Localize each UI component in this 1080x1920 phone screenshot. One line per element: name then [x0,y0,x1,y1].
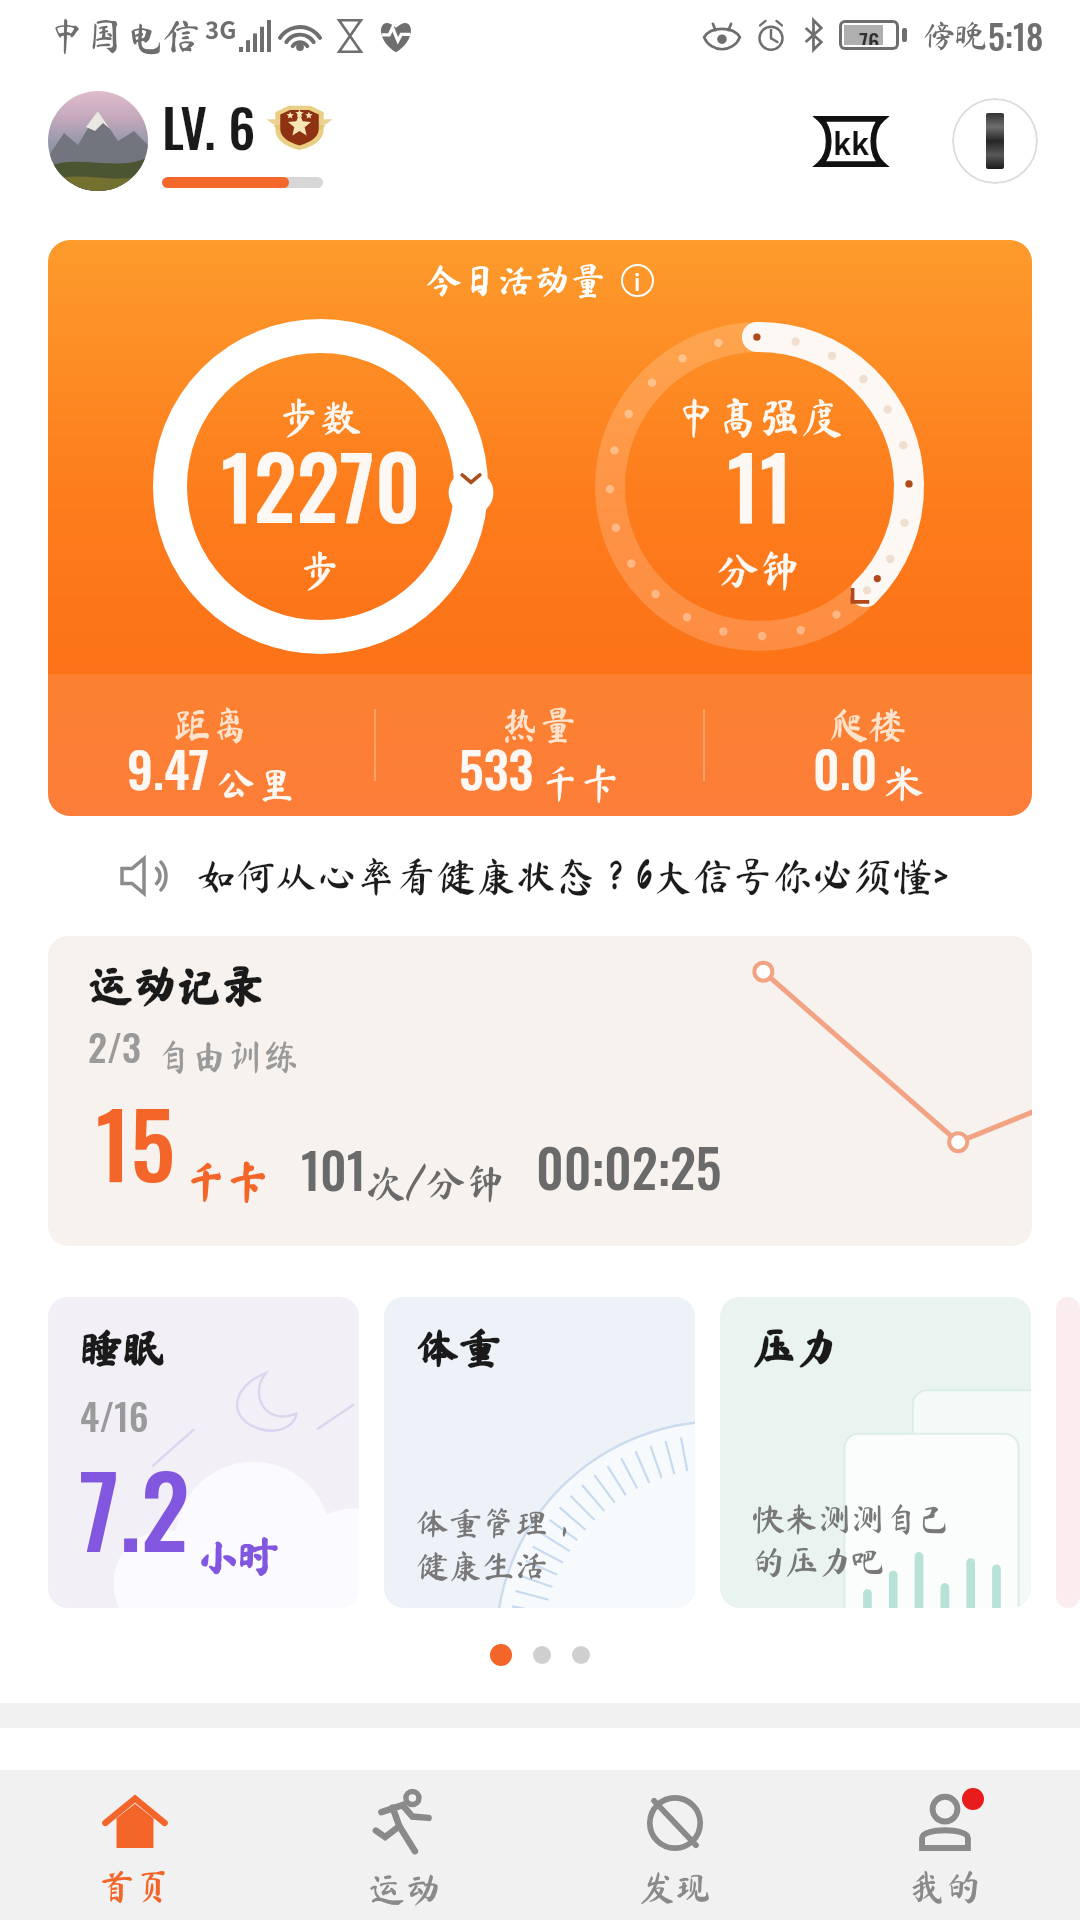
staticText: 7.2 [79,1435,190,1580]
staticText: 运动记录 [88,964,264,1008]
staticText: 千卡 [540,763,620,803]
staticText: 5:18 [988,10,1044,60]
staticText: 体重 [416,1327,501,1369]
staticText: 中国电信 [48,17,201,55]
staticText: 距离 [173,706,250,744]
button[interactable]: 我的 [810,1778,1080,1920]
staticText: 533 [459,730,534,804]
staticText: 傍晚 [923,19,988,51]
staticText: 3G [205,11,237,46]
staticText: 分钟 [717,549,802,591]
staticText: 76 [859,25,880,45]
staticText: 如何从心率看健康状态？6大信号你必须懂> [196,856,949,896]
staticText: 101 [301,1131,366,1205]
staticText: 爬楼 [830,706,907,744]
staticText: 步 [299,549,342,591]
staticText: 的压力吧 [752,1545,884,1578]
staticText: 11 [727,420,793,547]
staticText: 00:02:25 [536,1128,722,1205]
staticText: i [634,265,641,297]
staticText: 中高强度 [675,396,844,438]
staticText: 首页 [99,1868,172,1904]
staticText: 小时 [195,1535,280,1577]
staticText: 发现 [639,1869,712,1905]
button[interactable]: 运动 [270,1778,540,1920]
staticText: 4/16 [80,1387,149,1443]
button[interactable]: Device [952,98,1038,184]
button[interactable]: 如何从心率看健康状态？6大信号你必须懂> [120,816,1040,936]
button[interactable]: 体重 [384,1297,695,1608]
staticText: 公里 [216,763,296,803]
staticText: 2/3 [88,1018,141,1074]
staticText: 千卡 [184,1161,269,1203]
button[interactable]: 首页 [0,1778,270,1920]
button[interactable]: Profile avatar [48,91,148,191]
button[interactable]: 压力 [720,1297,1031,1608]
staticText: LV. 6 [162,88,256,165]
staticText: 9.47 [127,730,210,804]
staticText: 次/分钟 [366,1163,506,1203]
staticText: kk [833,120,870,163]
button[interactable]: 运动记录 [48,936,1032,1246]
staticText: 今日活动量 [426,262,607,298]
staticText: 12270 [221,420,421,547]
staticText: 快来测测自己 [752,1502,950,1535]
staticText: 自由训练 [155,1038,300,1074]
staticText: 我的 [909,1868,982,1904]
staticText: 热量 [501,706,578,744]
staticText: 步数 [278,396,363,438]
staticText: 运动 [369,1871,442,1907]
button[interactable]: 发现 [540,1778,810,1920]
staticText: 压力 [752,1327,837,1369]
button[interactable]: 睡眠 [48,1297,359,1608]
staticText: 15 [96,1075,175,1208]
staticText: 睡眠 [80,1327,165,1369]
staticText: 米 [884,763,924,803]
staticText: 健康生活 [416,1549,548,1582]
button[interactable]: Info [621,264,654,297]
staticText: 0.0 [813,730,878,804]
staticText: 体重管理， [416,1506,581,1539]
button[interactable]: kk coupon [817,116,885,167]
button[interactable]: 今日活动量 [48,240,1032,816]
